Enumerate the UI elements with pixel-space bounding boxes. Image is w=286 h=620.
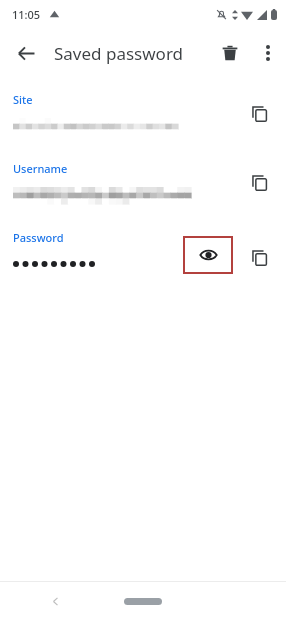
button[interactable]: Back bbox=[38, 584, 72, 618]
button[interactable]: Show password bbox=[183, 236, 233, 274]
button[interactable]: Delete bbox=[210, 33, 250, 73]
button[interactable]: Copy Username bbox=[242, 165, 278, 201]
staticText: 11:05 bbox=[12, 7, 41, 22]
staticText: Saved password bbox=[54, 42, 184, 65]
button[interactable]: More options bbox=[250, 35, 286, 71]
button[interactable]: Home bbox=[121, 593, 165, 609]
button[interactable]: Copy Site bbox=[242, 96, 278, 132]
staticText: Site bbox=[13, 92, 33, 107]
staticText: Username bbox=[13, 161, 68, 176]
button[interactable]: Back bbox=[6, 33, 46, 73]
button[interactable]: Copy password bbox=[242, 240, 278, 276]
staticText: Password bbox=[13, 230, 64, 245]
